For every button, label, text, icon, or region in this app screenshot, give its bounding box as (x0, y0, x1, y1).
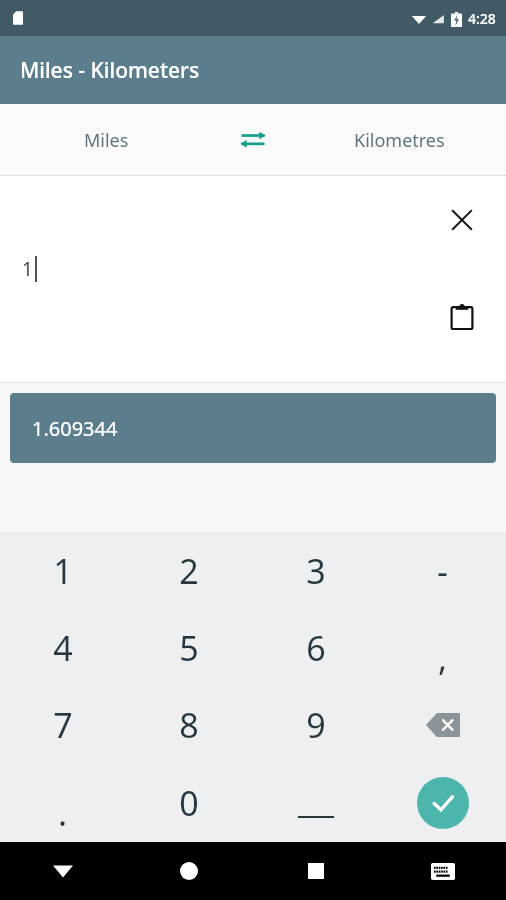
staticText: 6 (306, 625, 326, 671)
staticText: 9 (306, 702, 326, 748)
button[interactable]: 4 (0, 609, 126, 686)
button[interactable]: 8 (126, 686, 252, 764)
staticText: Miles (84, 128, 129, 153)
button[interactable]: 1 (0, 532, 126, 609)
staticText: 0 (179, 780, 199, 826)
staticText: 5 (179, 625, 199, 671)
button[interactable]: 9 (252, 686, 379, 764)
button[interactable]: Paste from clipboard (440, 294, 484, 338)
staticText: 1.609344 (32, 415, 118, 442)
staticText: 1 (22, 256, 33, 282)
button[interactable]: Kilometres (293, 104, 506, 176)
button[interactable]: 2 (126, 532, 252, 609)
staticText: 1 (53, 548, 73, 594)
button[interactable]: . (0, 764, 126, 842)
button[interactable]: Space (252, 764, 379, 842)
staticText: 7 (53, 702, 73, 748)
button[interactable]: 7 (0, 686, 126, 764)
button[interactable]: Done (379, 764, 506, 842)
button[interactable]: - (379, 532, 506, 609)
staticText: 8 (179, 702, 199, 748)
button[interactable]: Recent apps (252, 842, 379, 900)
staticText: Miles - Kilometers (20, 56, 200, 85)
button[interactable]: Switch keyboard (379, 842, 506, 900)
button[interactable]: Backspace (379, 686, 506, 764)
button[interactable]: Clear (440, 198, 484, 242)
button[interactable]: 5 (126, 609, 252, 686)
button[interactable]: , (379, 609, 506, 686)
staticText: Kilometres (354, 128, 445, 153)
button[interactable]: Miles (0, 104, 213, 176)
button[interactable]: Home (126, 842, 252, 900)
staticText: 3 (306, 548, 326, 594)
button[interactable]: 6 (252, 609, 379, 686)
staticText: , (438, 635, 448, 681)
button[interactable]: 1.609344 (10, 393, 496, 463)
button[interactable]: Back (0, 842, 126, 900)
staticText: . (58, 790, 68, 836)
button[interactable]: 0 (126, 764, 252, 842)
button[interactable]: 3 (252, 532, 379, 609)
staticText: 4:28 (468, 9, 496, 28)
staticText: - (437, 548, 448, 594)
button[interactable]: Swap units (213, 104, 293, 176)
staticText: 2 (179, 548, 199, 594)
staticText: 4 (53, 625, 73, 671)
